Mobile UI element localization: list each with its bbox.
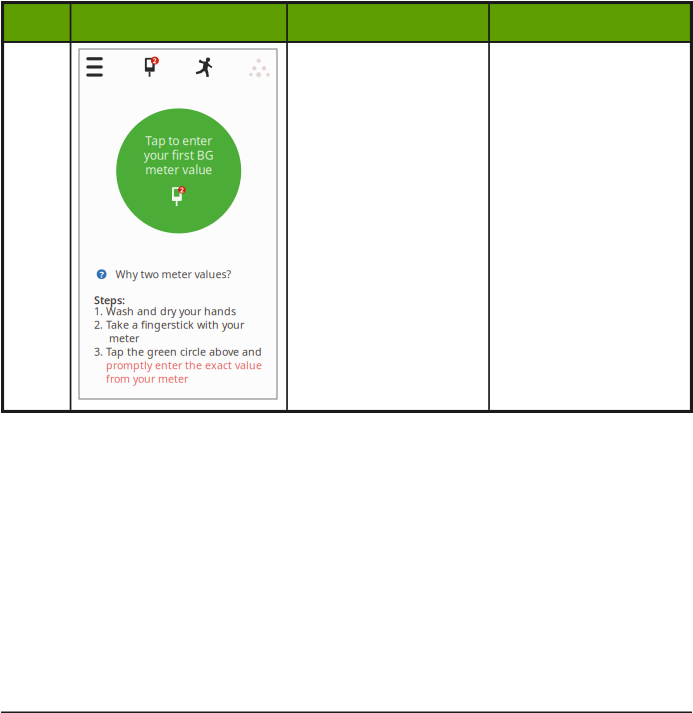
staticText: promptly enter the exact value <box>94 358 262 372</box>
staticText: meter <box>94 331 139 345</box>
staticText: 2. Take a fingerstick with your <box>94 317 244 332</box>
staticText: 1. Wash and dry your hands <box>94 304 236 318</box>
button[interactable]: Carbohydrates <box>235 49 277 83</box>
staticText: 2 <box>153 56 157 65</box>
staticText: ? <box>100 268 104 280</box>
button[interactable]: ? <box>94 265 226 283</box>
button[interactable]: Menu <box>79 49 131 83</box>
staticText: 2 <box>180 185 184 194</box>
button[interactable]: Tap to enter <box>116 108 241 233</box>
staticText: Tap to enter <box>145 133 212 149</box>
staticText: your first BG <box>144 147 214 163</box>
staticText: Steps: <box>94 293 125 307</box>
staticText: 3. Tap the green circle above and <box>94 344 262 359</box>
button[interactable]: Blood glucose meter, 2 entries pending <box>131 49 183 83</box>
button[interactable]: Activity <box>183 49 235 83</box>
staticText: Why two meter values? <box>115 267 231 281</box>
staticText: from your meter <box>94 371 188 386</box>
staticText: meter value <box>145 162 212 178</box>
